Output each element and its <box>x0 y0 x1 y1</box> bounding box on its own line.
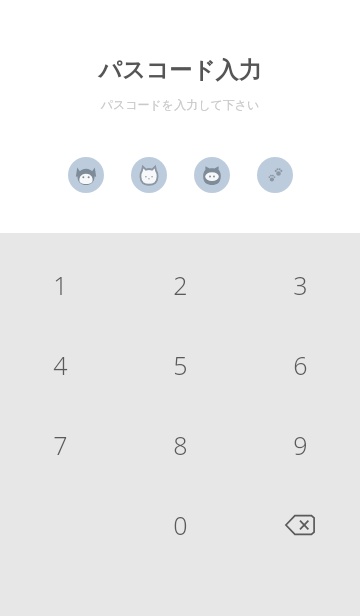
staticText: 9 <box>293 428 308 462</box>
button[interactable]: 6 <box>240 339 360 391</box>
button[interactable]: 9 <box>240 419 360 471</box>
staticText: パスコードを入力して下さい <box>0 97 360 112</box>
button[interactable]: 1 <box>0 259 120 311</box>
button[interactable]: Passcode digit 2 <box>131 157 167 193</box>
button[interactable]: Passcode digit 4 <box>257 157 293 193</box>
staticText: 3 <box>293 268 308 302</box>
staticText: 0 <box>173 508 188 542</box>
button[interactable]: 3 <box>240 259 360 311</box>
staticText: 6 <box>293 348 308 382</box>
button[interactable]: 7 <box>0 419 120 471</box>
staticText: 1 <box>53 268 68 302</box>
staticText: 5 <box>173 348 188 382</box>
button[interactable]: 8 <box>120 419 240 471</box>
staticText: 4 <box>53 348 68 382</box>
staticText: 7 <box>53 428 68 462</box>
button[interactable]: Passcode digit 3 <box>194 157 230 193</box>
button[interactable]: Passcode digit 1 <box>68 157 104 193</box>
staticText: パスコード入力 <box>0 56 360 85</box>
button[interactable]: 4 <box>0 339 120 391</box>
button[interactable]: 5 <box>120 339 240 391</box>
button[interactable]: 0 <box>120 499 240 551</box>
button[interactable]: Delete <box>240 499 360 551</box>
staticText: 8 <box>173 428 188 462</box>
button[interactable]: 2 <box>120 259 240 311</box>
staticText: 2 <box>173 268 188 302</box>
